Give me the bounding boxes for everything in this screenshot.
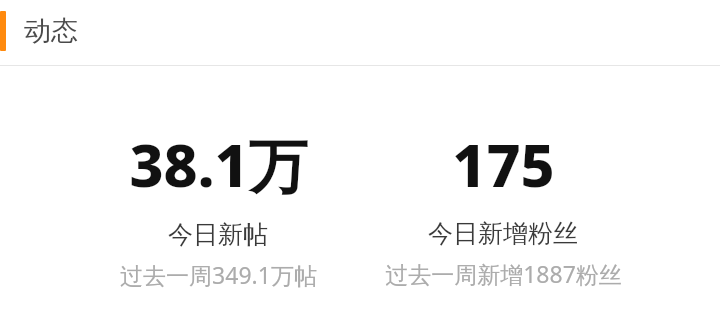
button[interactable]: 动态 — [24, 14, 78, 48]
button[interactable]: 38.1万 — [58, 124, 378, 290]
staticText: 今日新帖 — [168, 219, 268, 250]
staticText: 175 — [452, 124, 555, 204]
staticText: 动态 — [24, 14, 78, 48]
staticText: 38.1万 — [129, 124, 308, 205]
staticText: 过去一周349.1万帖 — [120, 259, 317, 290]
staticText: 今日新增粉丝 — [428, 218, 578, 249]
button[interactable]: 175 — [343, 124, 663, 289]
staticText: 过去一周新增1887粉丝 — [385, 258, 622, 289]
